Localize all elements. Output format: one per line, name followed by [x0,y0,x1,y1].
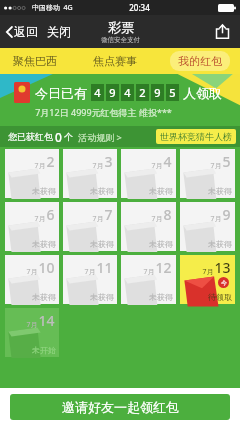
button[interactable]: 邀请好友一起领红包 [10,394,230,420]
button[interactable]: 焦点赛事 [90,50,140,72]
staticText: 4G [63,3,73,13]
staticText: 彩票 [108,19,134,35]
button[interactable]: 7月 [180,202,235,251]
staticText: 9 [222,205,231,224]
staticText: 人领取 [183,85,222,101]
staticText: 邀请好友一起领红包 [62,399,179,415]
staticText: 未获得 [90,292,114,302]
staticText: 7月 [202,267,214,277]
button[interactable]: 7月 [180,255,235,304]
staticText: 您已获红包 [8,131,53,142]
button[interactable]: 7月 [5,149,59,198]
staticText: 7月 [210,214,222,224]
staticText: 3 [104,152,113,171]
button[interactable]: 聚焦巴西 [10,50,60,72]
staticText: 9 [109,85,116,100]
staticText: 7月 [210,161,222,171]
button[interactable]: 7月 [121,255,176,304]
staticText: 聚焦巴西 [13,54,57,68]
button[interactable]: 7月 [5,308,59,357]
staticText: 2 [46,152,55,171]
staticText: 中国移动 [32,3,60,12]
staticText: 9 [154,85,161,100]
button[interactable]: 7月 [5,202,59,251]
button[interactable]: 7月 [180,149,235,198]
staticText: 未获得 [32,292,56,302]
button[interactable]: Share [211,20,234,43]
staticText: 今日已有 [35,85,87,101]
staticText: 7月 [92,161,104,171]
staticText: 焦点赛事 [93,54,137,68]
staticText: 7月 [151,214,163,224]
staticText: 未获得 [149,186,173,196]
staticText: 未获得 [90,239,114,249]
staticText: 7月 [151,161,163,171]
button[interactable]: 活动规则 > [78,128,122,146]
staticText: 关闭 [47,24,71,39]
staticText: 未获得 [32,239,56,249]
staticText: 我的红包 [178,54,222,68]
staticText: 7月 [34,214,46,224]
staticText: 未获得 [149,239,173,249]
button[interactable]: 7月 [63,149,117,198]
staticText: 个 [64,131,73,142]
staticText: 微信安全支付 [101,36,140,44]
staticText: 未开始 [32,345,56,355]
staticText: 4 [163,152,172,171]
button[interactable]: 7月 [121,202,176,251]
button[interactable]: 7月 [5,255,59,304]
staticText: 4 [124,85,131,100]
button[interactable]: 世界杯竞猜牛人榜 [156,129,236,144]
staticText: 8 [163,205,172,224]
staticText: 待领取 [208,292,232,302]
staticText: 7月12日 4999元红包得主 维投*** [35,106,172,118]
staticText: 返回 [14,24,38,39]
staticText: 未获得 [208,239,232,249]
staticText: 5 [169,85,176,100]
staticText: 7月 [34,161,46,171]
staticText: 7 [104,205,113,224]
button[interactable]: 7月 [63,255,117,304]
staticText: 6 [46,205,55,224]
button[interactable]: 7月 [121,149,176,198]
staticText: 7月 [26,267,38,277]
staticText: 5 [222,152,231,171]
staticText: 12 [155,258,172,277]
staticText: 7月 [84,267,96,277]
staticText: 11 [96,258,113,277]
staticText: 13 [214,258,231,277]
staticText: 未获得 [32,186,56,196]
staticText: 活动规则 > [78,131,122,143]
staticText: 未获得 [208,186,232,196]
button[interactable]: 7月 [63,202,117,251]
button[interactable]: 返回 [4,20,40,43]
staticText: 4 [94,85,101,100]
staticText: 7月 [143,267,155,277]
staticText: 2 [139,85,146,100]
staticText: 未获得 [149,292,173,302]
staticText: 20:34 [129,2,150,13]
button[interactable]: 关闭 [45,20,73,43]
staticText: 14 [38,311,55,330]
button[interactable]: 我的红包 [170,51,230,71]
staticText: 7月 [26,320,38,330]
staticText: 0 [55,129,62,145]
staticText: 今 [221,279,227,287]
staticText: 7月 [92,214,104,224]
staticText: 世界杯竞猜牛人榜 [160,131,232,142]
staticText: 10 [38,258,55,277]
staticText: 未获得 [90,186,114,196]
